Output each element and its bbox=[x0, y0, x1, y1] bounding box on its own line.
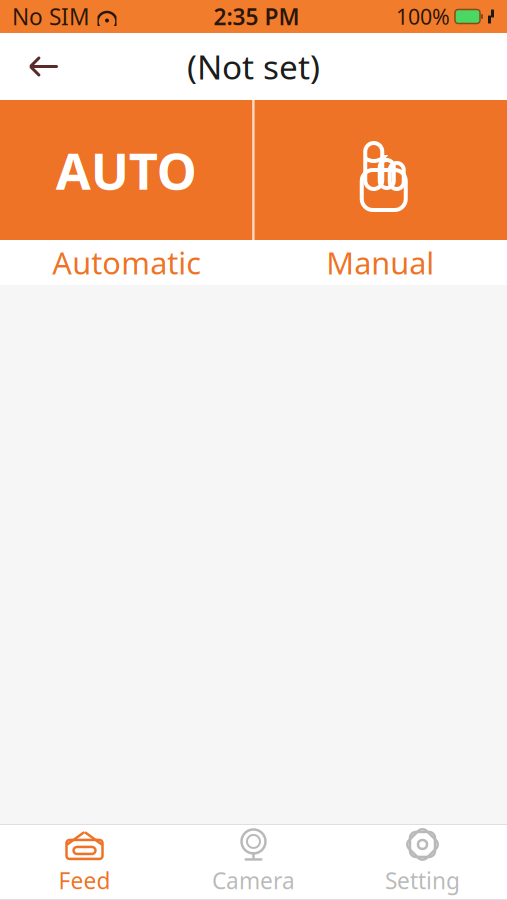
button[interactable]: Camera bbox=[169, 825, 338, 899]
button[interactable]: Manual bbox=[254, 100, 507, 240]
staticText: Setting bbox=[385, 865, 460, 895]
staticText: Feed bbox=[58, 865, 110, 895]
staticText: Manual bbox=[326, 242, 434, 283]
staticText: 2:35 PM bbox=[213, 1, 299, 31]
button[interactable]: Feed bbox=[0, 825, 169, 899]
staticText: 100% bbox=[396, 2, 450, 31]
button[interactable]: Setting bbox=[338, 825, 507, 899]
staticText: Automatic bbox=[52, 242, 201, 283]
button[interactable]: AUTO bbox=[0, 100, 252, 240]
staticText: (Not set) bbox=[187, 44, 320, 89]
staticText: No SIM bbox=[12, 1, 90, 31]
button[interactable]: Back bbox=[22, 44, 66, 88]
staticText: Camera bbox=[212, 865, 295, 895]
staticText: AUTO bbox=[56, 136, 197, 204]
